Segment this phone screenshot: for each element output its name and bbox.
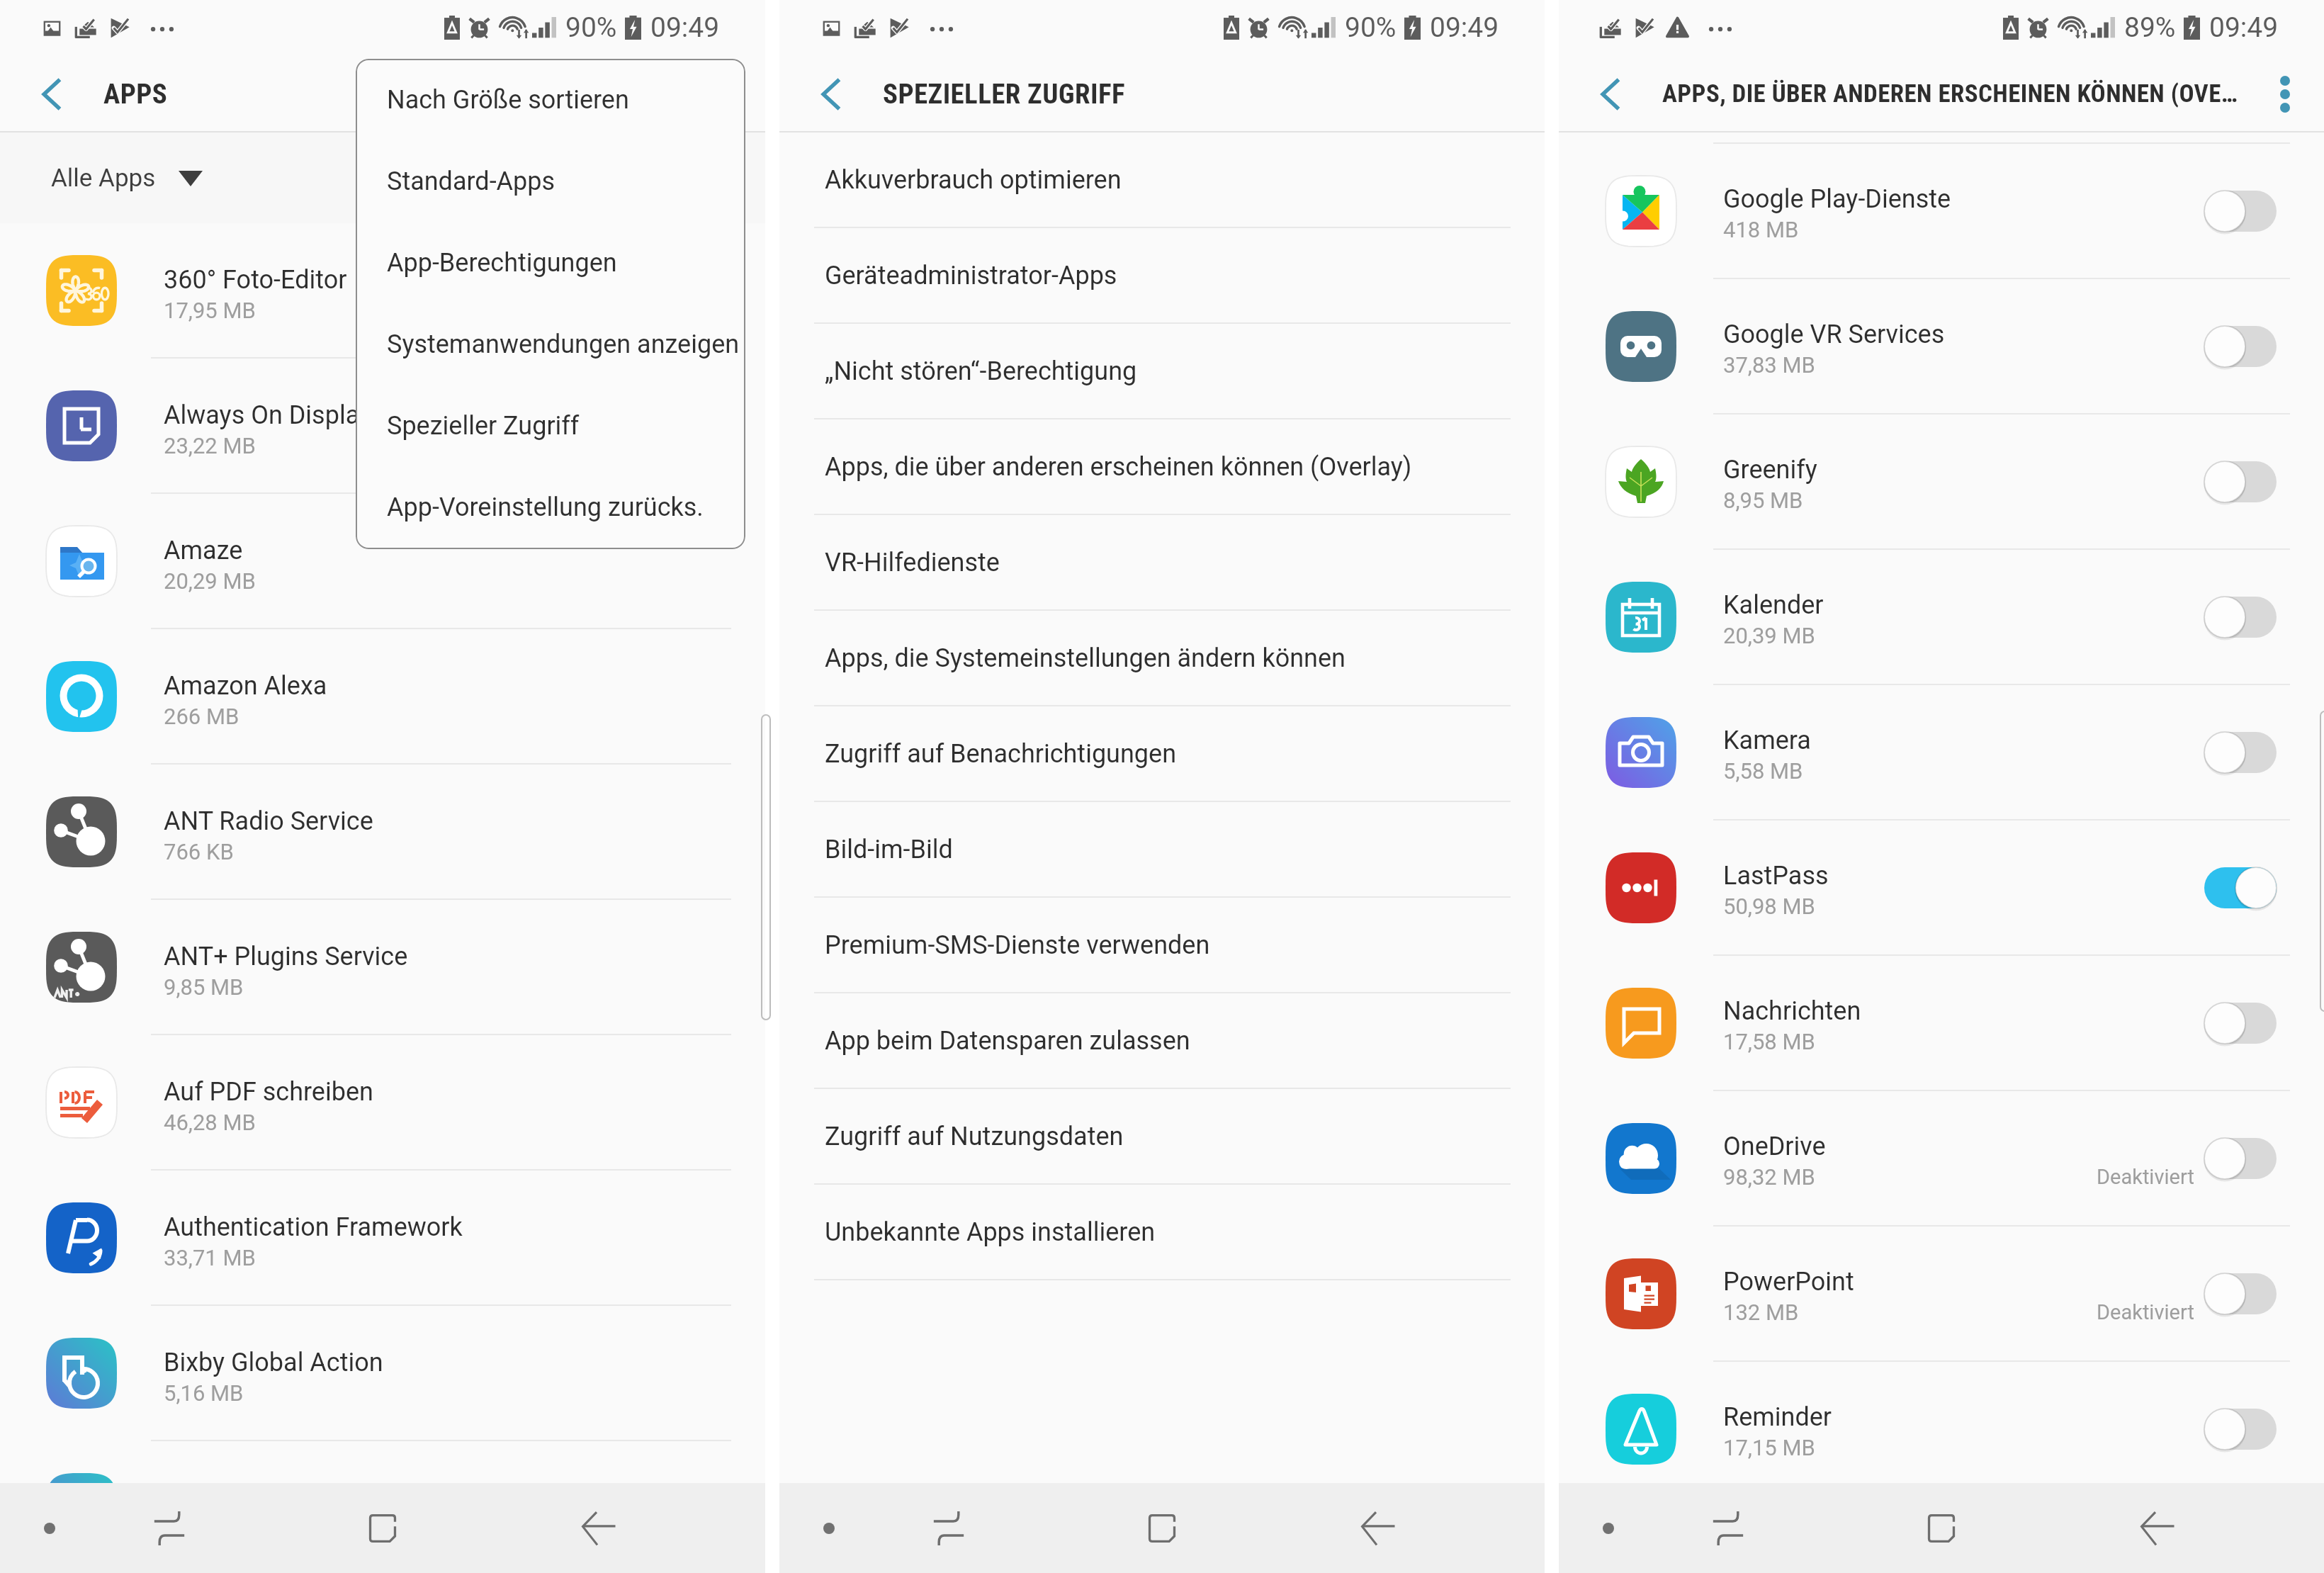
button[interactable]: Systemanwendungen anzeigen bbox=[356, 303, 745, 385]
button[interactable]: Akkuverbrauch optimieren bbox=[779, 133, 1545, 227]
staticText: Amazon Alexa bbox=[164, 671, 327, 701]
staticText: OneDrive bbox=[1723, 1132, 1826, 1161]
staticText: Premium-SMS-Dienste verwenden bbox=[825, 930, 1210, 960]
button[interactable]: OneDrive bbox=[1559, 1091, 2324, 1225]
button[interactable]: Standard-Apps bbox=[356, 140, 745, 222]
staticText: Google Play-Dienste bbox=[1723, 184, 1951, 214]
button[interactable]: Apps, die über anderen erscheinen können… bbox=[779, 419, 1545, 514]
staticText: Authentication Framework bbox=[164, 1212, 463, 1242]
button[interactable]: Spezieller Zugriff bbox=[356, 385, 745, 466]
staticText: Apps, die Systemeinstellungen ändern kön… bbox=[825, 643, 1346, 673]
staticText: Geräteadministrator-Apps bbox=[825, 261, 1117, 291]
staticText: Kamera bbox=[1723, 726, 1811, 755]
button[interactable]: More options bbox=[2246, 55, 2324, 133]
button[interactable]: Kalender bbox=[1559, 550, 2324, 684]
button[interactable]: App-Berechtigungen bbox=[356, 222, 745, 303]
staticText: „Nicht stören“-Berechtigung bbox=[825, 356, 1137, 386]
button[interactable]: Toggle PowerPoint bbox=[2204, 1273, 2277, 1314]
staticText: 9,85 MB bbox=[164, 974, 244, 1000]
button[interactable]: Bild-im-Bild bbox=[779, 802, 1545, 896]
button[interactable]: Back bbox=[1321, 1483, 1435, 1573]
button[interactable]: Amaze bbox=[0, 494, 765, 628]
button[interactable]: Toggle Kalender bbox=[2204, 597, 2277, 638]
button[interactable]: „Nicht stören“-Berechtigung bbox=[779, 324, 1545, 418]
staticText: Spezieller Zugriff bbox=[387, 411, 580, 441]
staticText: Nachrichten bbox=[1723, 996, 1861, 1026]
button[interactable]: Toggle OneDrive bbox=[2204, 1138, 2277, 1179]
button[interactable]: LastPass bbox=[1559, 821, 2324, 954]
button[interactable]: Bixby Voice bbox=[0, 1441, 765, 1483]
button[interactable]: Home bbox=[1105, 1483, 1219, 1573]
button[interactable]: Bixby Global Action bbox=[0, 1306, 765, 1440]
button[interactable]: Toggle Google Play-Dienste bbox=[2204, 191, 2277, 232]
staticText: 09:49 bbox=[2209, 11, 2279, 44]
button[interactable]: Toggle Kamera bbox=[2204, 732, 2277, 773]
staticText: 89% bbox=[2124, 11, 2176, 44]
staticText: App-Berechtigungen bbox=[387, 248, 617, 278]
button[interactable]: Nachrichten bbox=[1559, 956, 2324, 1090]
button[interactable]: Nach Größe sortieren bbox=[356, 59, 745, 140]
button[interactable]: Geräteadministrator-Apps bbox=[779, 228, 1545, 322]
button[interactable]: ANT Radio Service bbox=[0, 765, 765, 898]
button[interactable]: Greenify bbox=[1559, 415, 2324, 548]
button[interactable]: Navigation hint bbox=[808, 1507, 850, 1550]
staticText: App beim Datensparen zulassen bbox=[825, 1026, 1190, 1056]
staticText: Amaze bbox=[164, 536, 243, 565]
button[interactable]: Recents bbox=[1671, 1483, 1785, 1573]
staticText: Deaktiviert bbox=[2097, 1300, 2194, 1324]
staticText: Nach Größe sortieren bbox=[387, 85, 629, 115]
staticText: 90% bbox=[565, 11, 617, 44]
button[interactable]: Amazon Alexa bbox=[0, 629, 765, 763]
button[interactable]: Toggle Google VR Services bbox=[2204, 326, 2277, 367]
staticText: Standard-Apps bbox=[387, 167, 555, 196]
button[interactable]: Premium-SMS-Dienste verwenden bbox=[779, 898, 1545, 992]
button[interactable]: Toggle LastPass bbox=[2204, 867, 2277, 908]
button[interactable]: Google Play-Dienste bbox=[1559, 144, 2324, 278]
staticText: 5,58 MB bbox=[1723, 758, 1803, 784]
button[interactable]: Zugriff auf Benachrichtigungen bbox=[779, 706, 1545, 801]
button[interactable]: Recents bbox=[113, 1483, 226, 1573]
button[interactable]: Back bbox=[0, 55, 103, 133]
staticText: 418 MB bbox=[1723, 217, 1799, 242]
staticText: APPS, DIE ÜBER ANDEREN ERSCHEINEN KÖNNEN… bbox=[1662, 79, 2246, 108]
button[interactable]: Unbekannte Apps installieren bbox=[779, 1185, 1545, 1279]
button[interactable]: Back bbox=[2101, 1483, 2214, 1573]
button[interactable]: Reminder bbox=[1559, 1362, 2324, 1483]
button[interactable]: Back bbox=[779, 55, 883, 133]
button[interactable]: Authentication Framework bbox=[0, 1171, 765, 1304]
staticText: Greenify bbox=[1723, 455, 1817, 485]
button[interactable]: ANT+ Plugins Service bbox=[0, 900, 765, 1034]
button[interactable]: Navigation hint bbox=[28, 1507, 71, 1550]
staticText: APPS bbox=[103, 78, 744, 111]
button[interactable]: Alle Apps bbox=[51, 164, 203, 193]
button[interactable]: Auf PDF schreiben bbox=[0, 1035, 765, 1169]
button[interactable]: PowerPoint bbox=[1559, 1227, 2324, 1360]
staticText: Reminder bbox=[1723, 1402, 1832, 1432]
button[interactable]: Toggle Reminder bbox=[2204, 1409, 2277, 1450]
staticText: ANT Radio Service bbox=[164, 806, 373, 836]
staticText: Kalender bbox=[1723, 590, 1824, 620]
button[interactable]: Kamera bbox=[1559, 685, 2324, 819]
button[interactable]: Zugriff auf Nutzungsdaten bbox=[779, 1089, 1545, 1183]
staticText: 132 MB bbox=[1723, 1299, 1799, 1325]
button[interactable]: VR-Hilfedienste bbox=[779, 515, 1545, 609]
staticText: 17,15 MB bbox=[1723, 1435, 1815, 1460]
button[interactable]: Recents bbox=[892, 1483, 1005, 1573]
button[interactable]: Toggle Greenify bbox=[2204, 461, 2277, 502]
button[interactable]: Always On Display bbox=[0, 359, 765, 492]
button[interactable]: Home bbox=[1885, 1483, 1998, 1573]
button[interactable]: Home bbox=[326, 1483, 439, 1573]
staticText: 17,95 MB bbox=[164, 298, 256, 323]
button[interactable]: Apps, die Systemeinstellungen ändern kön… bbox=[779, 611, 1545, 705]
button[interactable]: Navigation hint bbox=[1587, 1507, 1630, 1550]
button[interactable]: App-Voreinstellung zurücks. bbox=[356, 466, 745, 548]
button[interactable]: Google VR Services bbox=[1559, 279, 2324, 413]
button[interactable]: Back bbox=[1559, 55, 1662, 133]
button[interactable]: Toggle Nachrichten bbox=[2204, 1003, 2277, 1044]
button[interactable]: 360° Foto-Editor bbox=[0, 223, 765, 357]
button[interactable]: Back bbox=[542, 1483, 655, 1573]
staticText: Bixby Global Action bbox=[164, 1348, 383, 1377]
staticText: Zugriff auf Benachrichtigungen bbox=[825, 739, 1177, 769]
staticText: Unbekannte Apps installieren bbox=[825, 1217, 1156, 1247]
button[interactable]: App beim Datensparen zulassen bbox=[779, 993, 1545, 1088]
